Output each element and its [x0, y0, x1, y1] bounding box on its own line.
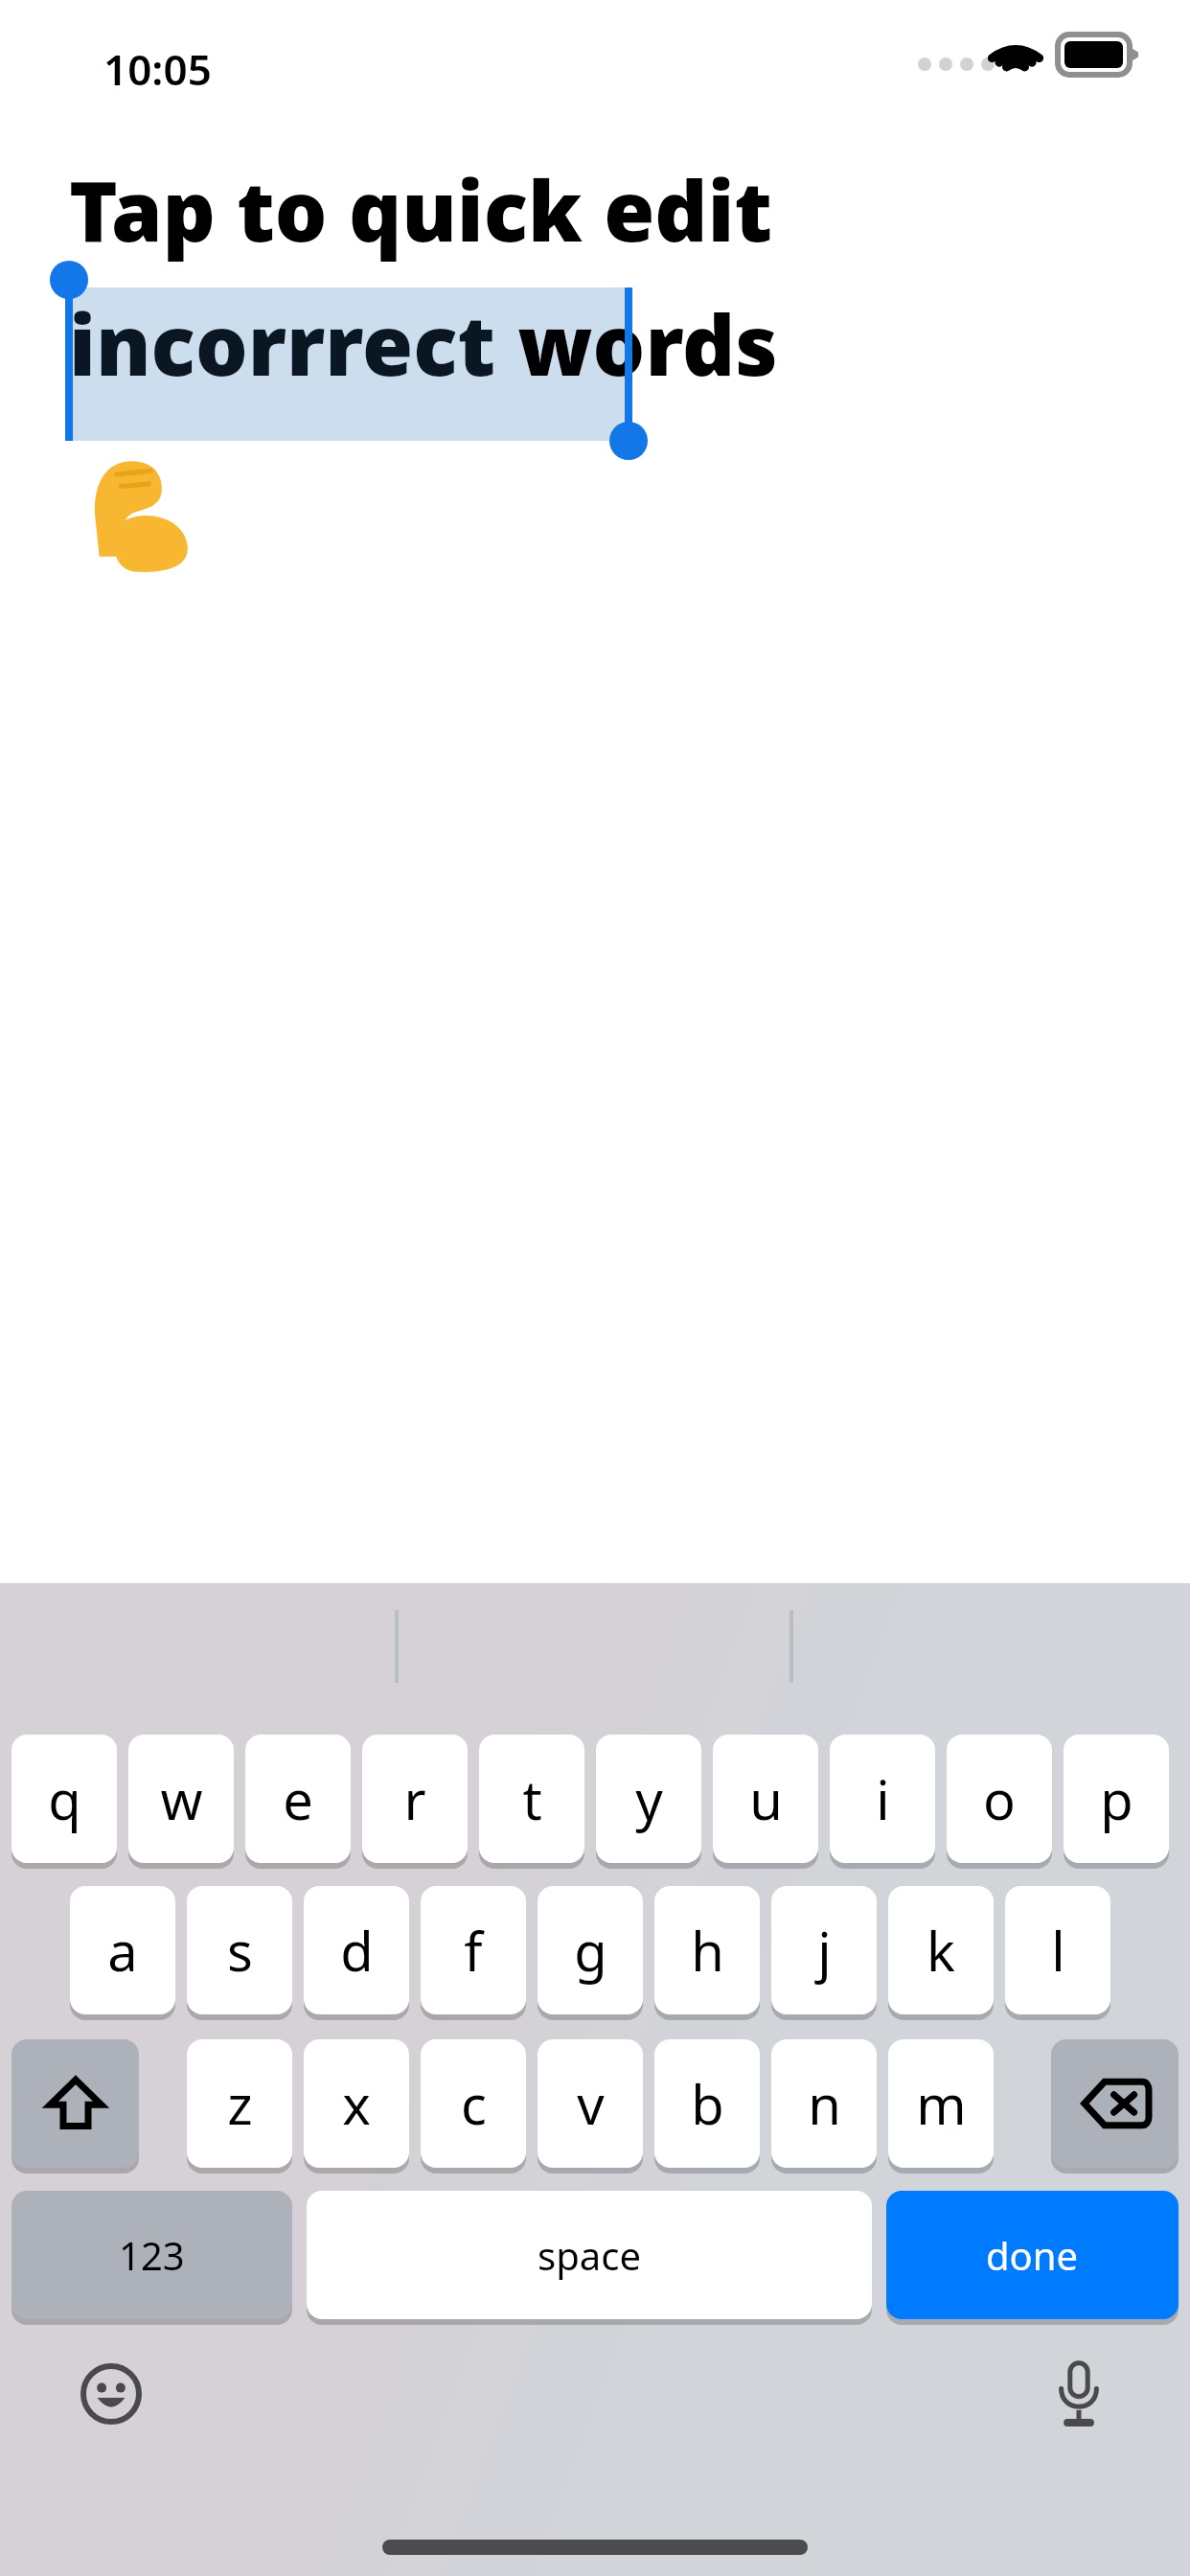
staticText: 123 — [119, 2229, 185, 2281]
button[interactable]: a — [70, 1886, 175, 2014]
staticText: k — [927, 1914, 955, 1987]
button[interactable]: incorrrect — [69, 287, 778, 400]
button[interactable]: Emoji keyboard — [75, 2357, 148, 2430]
button[interactable]: done — [886, 2191, 1179, 2319]
button[interactable]: f — [421, 1886, 526, 2014]
staticText: v — [577, 2067, 605, 2140]
staticText: g — [574, 1914, 607, 1987]
staticText: space — [538, 2229, 641, 2281]
staticText: a — [107, 1914, 138, 1987]
button[interactable]: o — [947, 1735, 1052, 1863]
button[interactable]: 123 — [11, 2191, 292, 2319]
button[interactable]: Shift — [11, 2039, 139, 2168]
staticText: q — [48, 1762, 81, 1835]
staticText: d — [340, 1914, 374, 1987]
staticText: p — [1100, 1762, 1133, 1835]
button[interactable]: j — [771, 1886, 877, 2014]
button[interactable]: m — [888, 2039, 994, 2168]
button[interactable]: Selection end handle — [609, 422, 648, 460]
button[interactable]: v — [538, 2039, 643, 2168]
staticText: l — [1051, 1914, 1065, 1987]
staticText: y — [635, 1762, 663, 1835]
button[interactable]: d — [304, 1886, 409, 2014]
staticText: n — [808, 2067, 841, 2140]
button[interactable]: u — [713, 1735, 818, 1863]
staticText: e — [283, 1762, 313, 1835]
button[interactable]: h — [654, 1886, 760, 2014]
staticText: incorrrect — [69, 287, 496, 400]
button[interactable]: n — [771, 2039, 877, 2168]
button[interactable]: b — [654, 2039, 760, 2168]
staticText: c — [461, 2067, 487, 2140]
button[interactable]: g — [538, 1886, 643, 2014]
button[interactable]: t — [479, 1735, 584, 1863]
button[interactable]: Backspace — [1051, 2039, 1179, 2168]
button[interactable]: e — [245, 1735, 351, 1863]
staticText: h — [691, 1914, 724, 1987]
staticText: z — [227, 2067, 253, 2140]
button[interactable]: x — [304, 2039, 409, 2168]
staticText: 10:05 — [103, 40, 212, 98]
button[interactable]: r — [362, 1735, 468, 1863]
button[interactable]: q — [11, 1735, 117, 1863]
staticText: b — [691, 2067, 724, 2140]
button[interactable]: c — [421, 2039, 526, 2168]
button[interactable]: space — [307, 2191, 872, 2319]
staticText: s — [227, 1914, 253, 1987]
staticText: done — [986, 2229, 1079, 2281]
button[interactable]: Tap to quick edit — [69, 153, 773, 265]
button[interactable]: l — [1005, 1886, 1110, 2014]
staticText: words — [496, 287, 778, 400]
button[interactable]: y — [596, 1735, 701, 1863]
button[interactable]: s — [187, 1886, 292, 2014]
staticText: o — [983, 1762, 1016, 1835]
button[interactable]: w — [128, 1735, 234, 1863]
staticText: r — [403, 1762, 426, 1835]
button[interactable]: Dictation — [1042, 2357, 1115, 2430]
staticText: x — [342, 2067, 371, 2140]
staticText: f — [464, 1914, 483, 1987]
staticText: j — [817, 1914, 832, 1987]
staticText: w — [160, 1762, 203, 1835]
button[interactable]: z — [187, 2039, 292, 2168]
staticText: t — [522, 1762, 542, 1835]
button[interactable]: Selection start handle — [50, 261, 88, 299]
button[interactable]: k — [888, 1886, 994, 2014]
staticText: i — [876, 1762, 890, 1835]
button[interactable]: i — [830, 1735, 935, 1863]
button[interactable]: p — [1064, 1735, 1169, 1863]
staticText: u — [749, 1762, 783, 1835]
staticText: m — [916, 2067, 967, 2140]
